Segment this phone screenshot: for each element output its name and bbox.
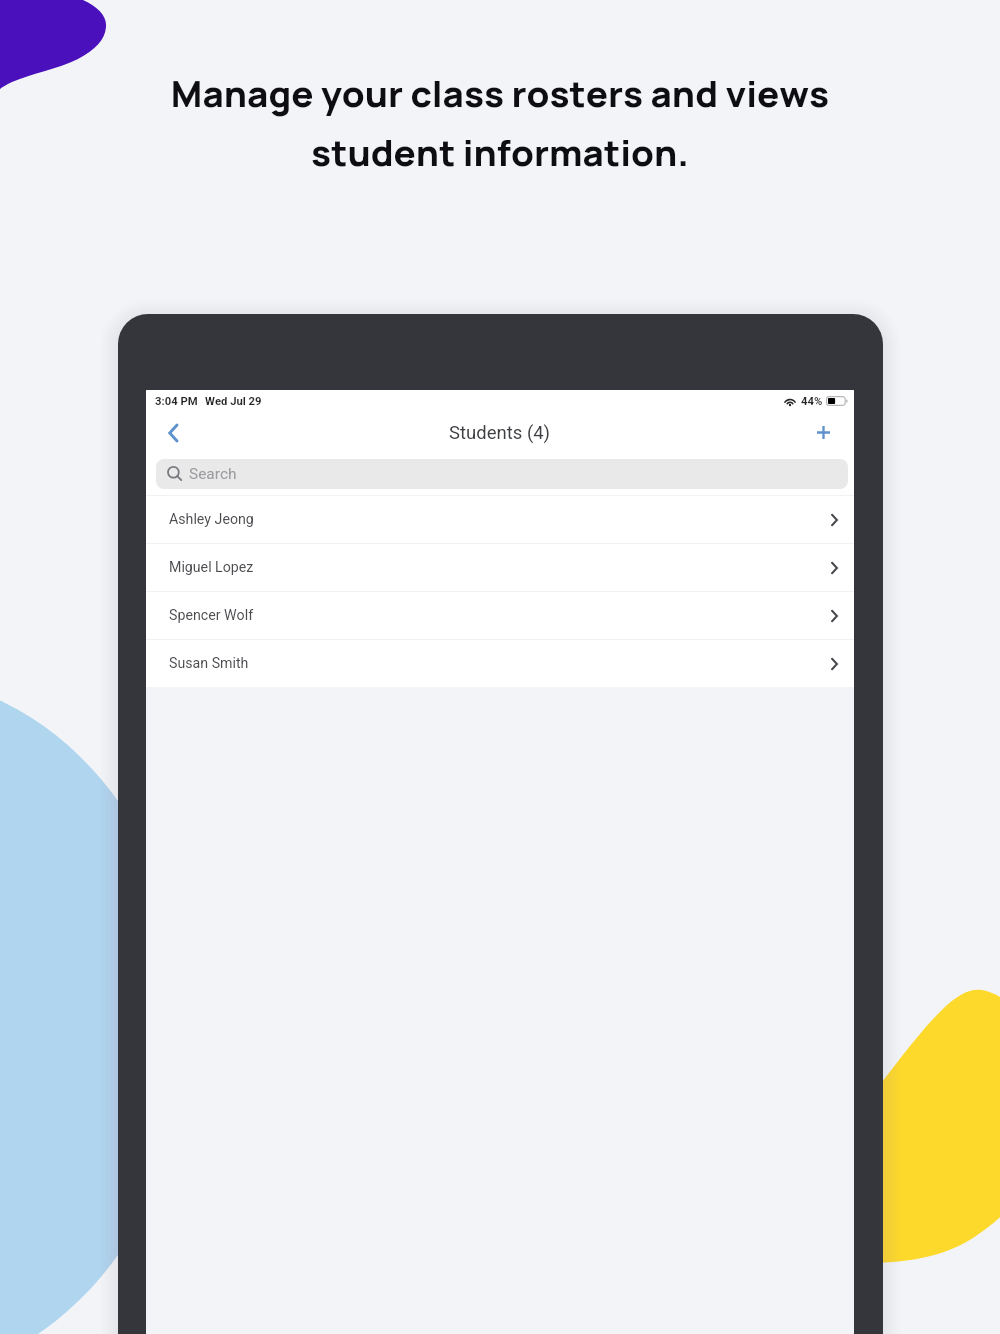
staticText: Search <box>189 465 237 483</box>
staticText: Miguel Lopez <box>169 559 254 576</box>
button[interactable]: Miguel Lopez <box>146 544 854 591</box>
staticText: 44% <box>801 395 823 408</box>
button[interactable]: Add <box>793 412 854 453</box>
staticText: Manage your class rosters and views stud… <box>0 68 1000 177</box>
staticText: 3:04 PM <box>155 395 198 408</box>
staticText: Wed Jul 29 <box>205 395 262 408</box>
button[interactable]: Back <box>146 412 200 453</box>
staticText: Susan Smith <box>169 655 249 672</box>
staticText: Ashley Jeong <box>169 511 254 528</box>
button[interactable]: Susan Smith <box>146 640 854 687</box>
button[interactable]: Ashley Jeong <box>146 496 854 543</box>
button[interactable]: Search <box>156 459 848 489</box>
staticText: Students (4) <box>449 422 551 444</box>
button[interactable]: Spencer Wolf <box>146 592 854 639</box>
staticText: Spencer Wolf <box>169 607 254 624</box>
